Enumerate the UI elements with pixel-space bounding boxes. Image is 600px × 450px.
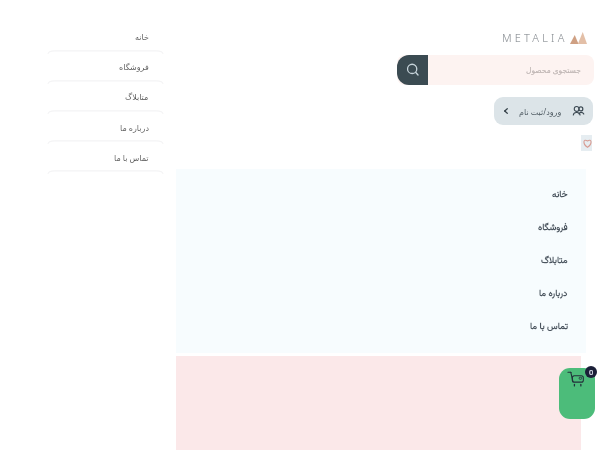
staticText: METALIA	[502, 30, 568, 45]
staticText: فروشگاه	[538, 221, 568, 235]
button[interactable]: خانه	[176, 178, 586, 211]
staticText: ورود/ثبت نام	[519, 106, 562, 117]
button[interactable]: Search	[397, 55, 428, 85]
button[interactable]: درباره ما	[176, 277, 586, 310]
button[interactable]: متابلاگ	[48, 84, 163, 110]
button[interactable]: درباره ما	[48, 114, 163, 140]
staticText: متابلاگ	[541, 254, 568, 268]
staticText: فروشگاه	[119, 63, 149, 72]
staticText: درباره ما	[120, 122, 149, 133]
staticText: جستجوی محصول	[526, 65, 581, 75]
button[interactable]: Cart	[559, 368, 595, 419]
button[interactable]: فروشگاه	[48, 54, 163, 80]
button[interactable]: تماس با ما	[176, 310, 586, 343]
button[interactable]: ورود/ثبت نام	[494, 97, 593, 125]
staticText: تماس با ما	[530, 320, 568, 334]
button[interactable]: Wishlist	[581, 135, 592, 151]
button[interactable]: METALIA	[502, 30, 587, 45]
staticText: تماس با ما	[114, 152, 149, 163]
staticText: خانه	[135, 33, 149, 42]
staticText: 0	[589, 367, 594, 377]
staticText: درباره ما	[539, 287, 568, 301]
staticText: خانه	[552, 188, 568, 202]
button[interactable]: تماس با ما	[48, 144, 163, 170]
button[interactable]: خانه	[48, 24, 163, 50]
button[interactable]: متابلاگ	[176, 244, 586, 277]
button[interactable]: فروشگاه	[176, 211, 586, 244]
staticText: متابلاگ	[125, 93, 149, 102]
